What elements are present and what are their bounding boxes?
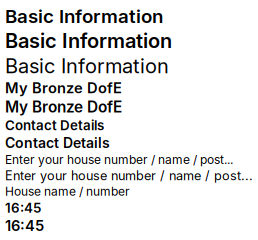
staticText: Enter your house number / name / post... — [5, 168, 253, 183]
staticText: Basic Information — [5, 5, 163, 28]
staticText: My Bronze DofE — [5, 79, 122, 97]
staticText: 16:45 — [5, 200, 41, 216]
staticText: 16:45 — [5, 217, 44, 235]
staticText: My Bronze DofE — [5, 98, 122, 116]
staticText: Enter your house number / name / post... — [5, 152, 233, 167]
staticText: House name / number — [5, 184, 130, 199]
staticText: Contact Details — [5, 134, 110, 151]
staticText: Basic Information — [5, 29, 172, 53]
staticText: Contact Details — [5, 117, 104, 133]
staticText: Basic Information — [5, 54, 169, 78]
